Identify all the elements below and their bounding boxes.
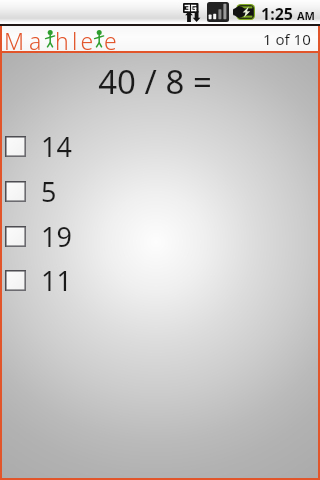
staticText: Ma	[4, 25, 47, 52]
staticText: 1:25	[261, 3, 293, 25]
staticText: 5	[41, 173, 57, 210]
other: 3G network	[183, 3, 201, 22]
button[interactable]: 14	[2, 124, 318, 168]
staticText: e	[104, 25, 120, 52]
staticText: 40 / 8 =	[0, 59, 313, 104]
button[interactable]: 5	[2, 169, 318, 213]
staticText: hle	[55, 25, 97, 52]
other: Battery charging	[233, 4, 255, 20]
staticText: 14	[41, 128, 72, 165]
staticText: 19	[41, 218, 72, 255]
button[interactable]: 11	[2, 258, 318, 302]
other: Signal strength	[207, 2, 229, 22]
staticText: AM	[297, 8, 315, 23]
staticText: 11	[41, 262, 72, 299]
button[interactable]: 19	[2, 214, 318, 258]
staticText: 1 of 10	[263, 29, 311, 49]
